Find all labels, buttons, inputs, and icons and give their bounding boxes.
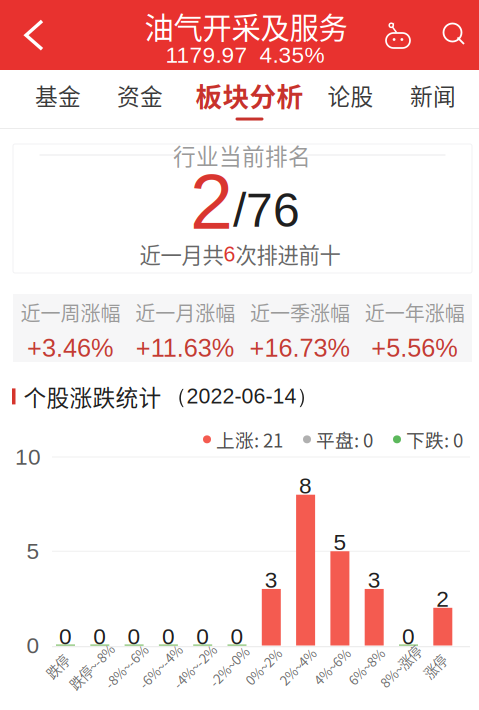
staticText: 板块分析 xyxy=(195,76,303,114)
staticText: /76 xyxy=(233,183,300,237)
staticText: 近一月共 xyxy=(139,239,223,269)
staticText: 近一月涨幅 xyxy=(135,298,235,327)
staticText: 0 xyxy=(402,624,415,649)
staticText: 资金 xyxy=(117,79,163,111)
staticText: 10 xyxy=(15,444,41,470)
staticText: 1179.97 4.35% xyxy=(165,42,324,68)
staticText: 0 xyxy=(128,624,141,649)
staticText: 论股 xyxy=(327,79,373,111)
staticText: 行业当前排名 xyxy=(173,139,311,171)
staticText: 0%~2% xyxy=(241,657,286,676)
staticText: 平盘: 0 xyxy=(316,426,373,453)
staticText: 0 xyxy=(93,624,106,649)
button[interactable]: Back xyxy=(6,0,62,70)
staticText: 0 xyxy=(162,624,175,649)
staticText: -6%~-4% xyxy=(133,657,188,676)
button[interactable]: AI assistant xyxy=(375,0,421,70)
staticText: 次排进前十 xyxy=(235,239,340,269)
button[interactable]: 新闻 xyxy=(393,70,473,128)
staticText: 0 xyxy=(230,624,243,649)
button[interactable]: Search xyxy=(431,0,479,70)
staticText: 0 xyxy=(26,633,39,658)
staticText: -4%~-2% xyxy=(167,657,222,676)
staticText: 个股涨跌统计 xyxy=(23,380,161,413)
button[interactable]: 板块分析 xyxy=(194,70,304,128)
staticText: 5 xyxy=(333,530,346,555)
staticText: 8%~涨停 xyxy=(374,657,426,676)
staticText: 油气开采及服务 xyxy=(144,5,347,47)
staticText: +11.63% xyxy=(136,334,235,362)
staticText: +5.56% xyxy=(371,334,458,362)
staticText: 近一周涨幅 xyxy=(20,298,120,327)
button[interactable]: 资金 xyxy=(99,70,181,128)
staticText: 6%~8% xyxy=(344,657,389,676)
staticText: 跌停~-8% xyxy=(63,657,120,676)
staticText: 0 xyxy=(59,624,72,649)
button[interactable]: 基金 xyxy=(18,70,98,128)
staticText: 上涨: 21 xyxy=(216,426,283,453)
staticText: 0 xyxy=(196,624,209,649)
staticText: 3 xyxy=(368,567,381,593)
staticText: 基金 xyxy=(35,79,81,111)
staticText: 5 xyxy=(26,539,39,564)
staticText: 3 xyxy=(265,567,278,593)
staticText: 8 xyxy=(299,473,312,498)
staticText: +16.73% xyxy=(249,334,350,362)
staticText: 近一季涨幅 xyxy=(250,298,350,327)
staticText: 跌停 xyxy=(44,657,70,676)
staticText: 新闻 xyxy=(410,79,456,111)
staticText: 4%~6% xyxy=(309,657,354,676)
staticText: 涨停 xyxy=(422,657,448,676)
staticText: 6 xyxy=(223,242,235,266)
staticText: 2 xyxy=(190,159,233,245)
staticText: +3.46% xyxy=(27,334,114,362)
staticText: -8%~-6% xyxy=(99,657,154,676)
staticText: （2022-06-14） xyxy=(165,383,317,410)
staticText: 2%~4% xyxy=(275,657,320,676)
staticText: 2 xyxy=(436,586,449,611)
button[interactable]: 论股 xyxy=(310,70,390,128)
staticText: -2%~0% xyxy=(204,657,254,676)
staticText: 下跌: 0 xyxy=(406,426,463,453)
staticText: 近一年涨幅 xyxy=(365,298,465,327)
